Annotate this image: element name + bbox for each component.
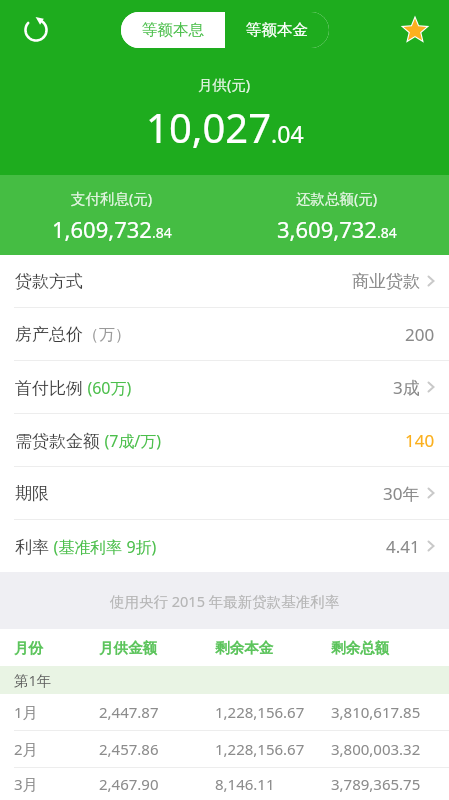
staticText: 等额本金 [246, 20, 308, 40]
staticText: 4.41 [386, 535, 420, 558]
staticText: 房产总价（万） [15, 324, 131, 345]
staticText: 200 [405, 323, 435, 346]
button[interactable]: 3月 [0, 768, 449, 800]
staticText: 剩余本金 [215, 639, 273, 657]
staticText: 第1年 [14, 670, 52, 690]
staticText: 2,457.86 [99, 739, 159, 759]
button[interactable]: Reset [14, 8, 58, 52]
staticText: 月供(元) [198, 74, 251, 94]
staticText: 支付利息(元) [71, 188, 153, 208]
staticText: 商业贷款 [352, 271, 420, 292]
button[interactable]: 2月 [0, 731, 449, 767]
button[interactable]: 贷款方式 [0, 255, 449, 307]
staticText: 剩余总额 [331, 639, 389, 657]
staticText: 月份 [14, 639, 43, 657]
button[interactable]: Favorite [393, 8, 437, 52]
staticText: 需贷款金额 (7成/万) [15, 429, 162, 452]
staticText: 利率 (基准利率 9折) [15, 535, 157, 558]
staticText: 10,027.04 [146, 100, 304, 154]
staticText: 1,609,732.84 [52, 214, 172, 244]
staticText: 1月 [14, 702, 38, 722]
staticText: 等额本息 [142, 20, 204, 40]
staticText: 3月 [14, 774, 38, 794]
button[interactable]: 房产总价（万） [0, 308, 449, 360]
staticText: 2月 [14, 739, 38, 759]
staticText: 3,810,617.85 [331, 702, 421, 722]
staticText: 8,146.11 [215, 774, 275, 794]
staticText: 3,789,365.75 [331, 774, 421, 794]
staticText: 3,800,003.32 [331, 739, 421, 759]
button[interactable]: 需贷款金额 (7成/万) [0, 414, 449, 466]
staticText: 3,609,732.84 [277, 214, 397, 244]
staticText: 1,228,156.67 [215, 739, 305, 759]
staticText: 3成 [393, 376, 420, 399]
staticText: 贷款方式 [15, 271, 83, 292]
button[interactable]: 等额本息 [121, 12, 225, 48]
staticText: 期限 [15, 483, 49, 504]
staticText: 还款总额(元) [296, 188, 378, 208]
staticText: 30年 [383, 482, 420, 505]
staticText: 使用央行 2015 年最新贷款基准利率 [110, 591, 340, 611]
staticText: 2,467.90 [99, 774, 159, 794]
staticText: 1,228,156.67 [215, 702, 305, 722]
staticText: 140 [405, 429, 435, 452]
staticText: 月供金额 [99, 639, 157, 657]
button[interactable]: 首付比例 (60万) [0, 361, 449, 413]
button[interactable]: 1月 [0, 694, 449, 730]
button[interactable]: 利率 (基准利率 9折) [0, 520, 449, 572]
staticText: 首付比例 (60万) [15, 376, 132, 399]
button[interactable]: 等额本金 [225, 12, 329, 48]
button[interactable]: 期限 [0, 467, 449, 519]
staticText: 2,447.87 [99, 702, 159, 722]
